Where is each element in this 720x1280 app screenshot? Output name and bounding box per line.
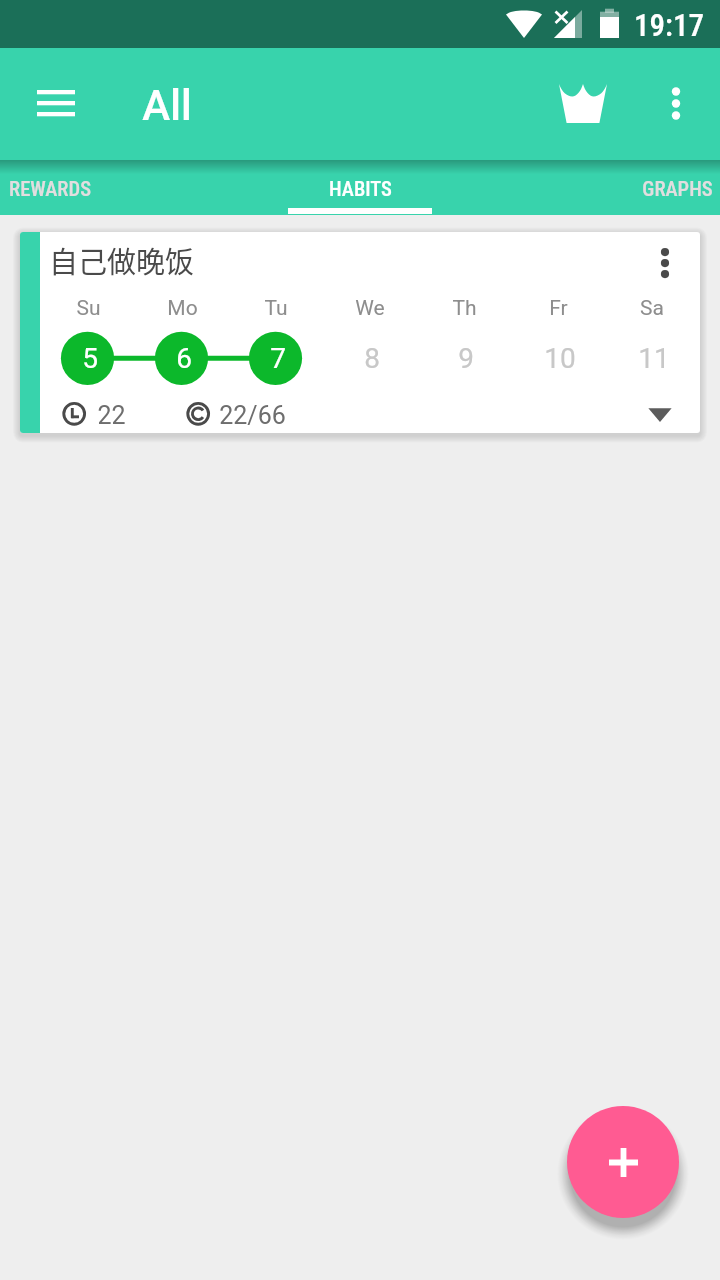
staticText: 5 (82, 342, 98, 375)
button[interactable]: Add habit (567, 1106, 679, 1218)
staticText: 22/66 (219, 401, 286, 430)
staticText: GRAPHS (642, 177, 713, 201)
staticText: Sa (640, 296, 664, 321)
staticText: 8 (364, 342, 380, 375)
staticText: Mo (167, 296, 198, 321)
staticText: HABITS (329, 177, 392, 201)
staticText: 7 (270, 342, 286, 375)
staticText: Fr (549, 296, 568, 321)
button[interactable]: Filter habits (550, 71, 618, 135)
button[interactable]: HABITS (288, 161, 432, 215)
staticText: Su (76, 296, 101, 321)
staticText: REWARDS (9, 177, 91, 201)
button[interactable]: Habit options (641, 232, 689, 294)
staticText: 10 (544, 342, 576, 375)
button[interactable]: Open navigation drawer (20, 70, 92, 136)
staticText: We (355, 296, 385, 321)
button[interactable]: REWARDS (0, 161, 200, 215)
button[interactable]: More options (652, 72, 700, 134)
staticText: Tu (264, 296, 288, 321)
staticText: 19:17 (634, 7, 704, 43)
staticText: 自己做晚饭 (49, 239, 195, 281)
staticText: 9 (458, 342, 474, 375)
staticText: All (142, 81, 192, 130)
staticText: 22 (97, 401, 126, 430)
staticText: 11 (638, 342, 670, 375)
button[interactable] (20, 232, 700, 433)
button[interactable]: GRAPHS (520, 161, 720, 215)
staticText: 6 (176, 342, 192, 375)
staticText: Th (452, 296, 477, 321)
button[interactable]: Expand habit (636, 391, 684, 439)
